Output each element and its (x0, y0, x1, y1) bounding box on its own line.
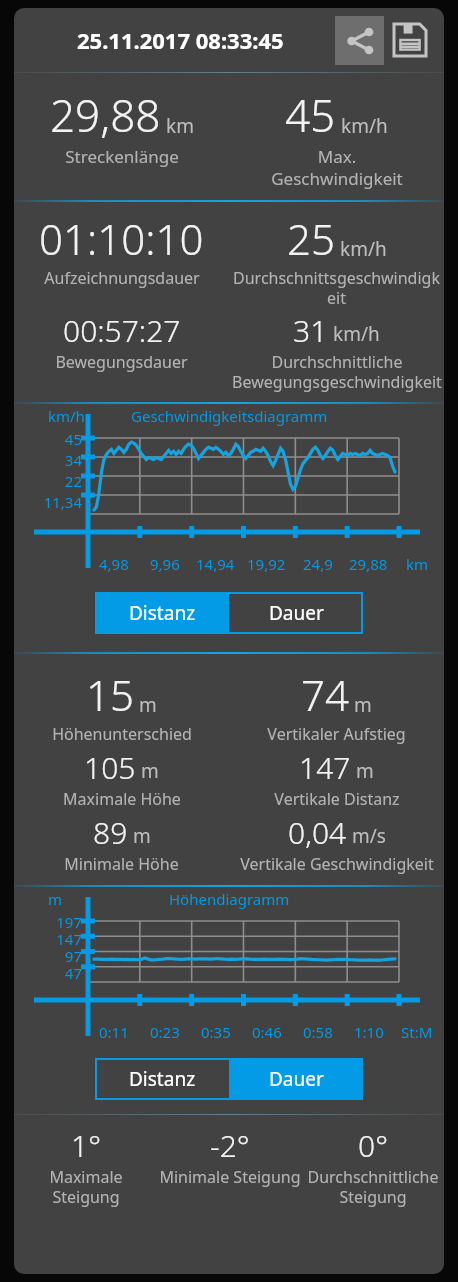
staticText: Streckenlänge (65, 145, 179, 168)
button[interactable]: Dauer (229, 592, 363, 634)
staticText: m/s (352, 823, 386, 849)
staticText: 0:46 (252, 1022, 282, 1042)
staticText: 22 (22, 471, 82, 491)
staticText: m (141, 758, 159, 784)
staticText: 0° (358, 1125, 388, 1166)
staticText: m (139, 692, 157, 718)
staticText: Maximale Steigung (14, 1166, 158, 1207)
staticText: 0,04 (288, 812, 347, 853)
staticText: km/h (333, 321, 380, 347)
staticText: Geschwindigkeitsdiagramm (131, 406, 328, 426)
staticText: 97 (22, 946, 82, 966)
staticText: m (354, 692, 372, 718)
staticText: 0:23 (150, 1022, 180, 1042)
staticText: 74 (301, 666, 349, 723)
staticText: 47 (22, 963, 82, 983)
staticText: Max. Geschwindigkeit (271, 145, 403, 190)
staticText: Durchschnittliche Bewegungsgeschwindigke… (232, 351, 442, 392)
staticText: 45 (22, 429, 82, 449)
staticText: km (406, 554, 429, 574)
staticText: Durchschnittliche Steigung (307, 1166, 439, 1207)
staticText: 9,96 (150, 554, 180, 574)
staticText: 19,92 (247, 554, 286, 574)
staticText: 34 (22, 450, 82, 470)
staticText: 45 (285, 85, 336, 145)
staticText: Minimale Steigung (159, 1166, 301, 1188)
button[interactable]: Save (390, 20, 430, 60)
button[interactable]: Distanz (95, 592, 229, 634)
staticText: 197 (22, 912, 82, 932)
staticText: 89 (93, 812, 128, 853)
button[interactable]: Dauer (229, 1058, 363, 1100)
staticText: 0:35 (201, 1022, 231, 1042)
staticText: 14,94 (196, 554, 235, 574)
staticText: km/h (48, 406, 85, 426)
staticText: m (356, 758, 374, 784)
staticText: Aufzeichnungsdauer (44, 267, 200, 289)
staticText: 0:11 (99, 1022, 129, 1042)
staticText: 105 (84, 747, 136, 788)
staticText: Vertikale Distanz (274, 788, 400, 810)
staticText: 01:10:10 (39, 210, 204, 267)
staticText: 25 (287, 210, 335, 267)
staticText: m (133, 823, 151, 849)
staticText: km/h (341, 113, 388, 139)
staticText: Minimale Höhe (64, 853, 179, 875)
staticText: -2° (210, 1125, 250, 1166)
staticText: Bewegungsdauer (55, 351, 188, 373)
staticText: Distanz (129, 1066, 196, 1092)
staticText: 147 (299, 747, 351, 788)
staticText: 147 (22, 929, 82, 949)
staticText: 29,88 (349, 554, 388, 574)
staticText: 1° (71, 1125, 101, 1166)
staticText: 4,98 (99, 554, 129, 574)
staticText: Dauer (269, 600, 324, 626)
staticText: 0:58 (303, 1022, 333, 1042)
staticText: km/h (340, 236, 387, 262)
staticText: 29,88 (50, 85, 161, 145)
staticText: Höhenunterschied (52, 723, 192, 745)
staticText: 24,9 (303, 554, 333, 574)
staticText: Distanz (129, 600, 196, 626)
staticText: Dauer (269, 1066, 324, 1092)
staticText: 11,34 (22, 492, 82, 512)
staticText: 25.11.2017 08:33:45 (77, 25, 284, 55)
staticText: Maximale Höhe (63, 788, 181, 810)
staticText: 1:10 (354, 1022, 384, 1042)
staticText: Höhendiagramm (169, 889, 290, 909)
staticText: 15 (86, 666, 134, 723)
staticText: Durchschnittsgeschwindigkeit (229, 267, 444, 308)
staticText: St:M (401, 1022, 433, 1042)
staticText: Vertikaler Aufstieg (267, 723, 406, 745)
staticText: km (166, 113, 194, 139)
button[interactable]: Share (335, 16, 384, 65)
button[interactable]: Distanz (95, 1058, 229, 1100)
staticText: Vertikale Geschwindigkeit (240, 853, 434, 875)
staticText: m (48, 889, 63, 909)
staticText: 00:57:27 (63, 310, 181, 351)
staticText: 31 (293, 310, 328, 351)
